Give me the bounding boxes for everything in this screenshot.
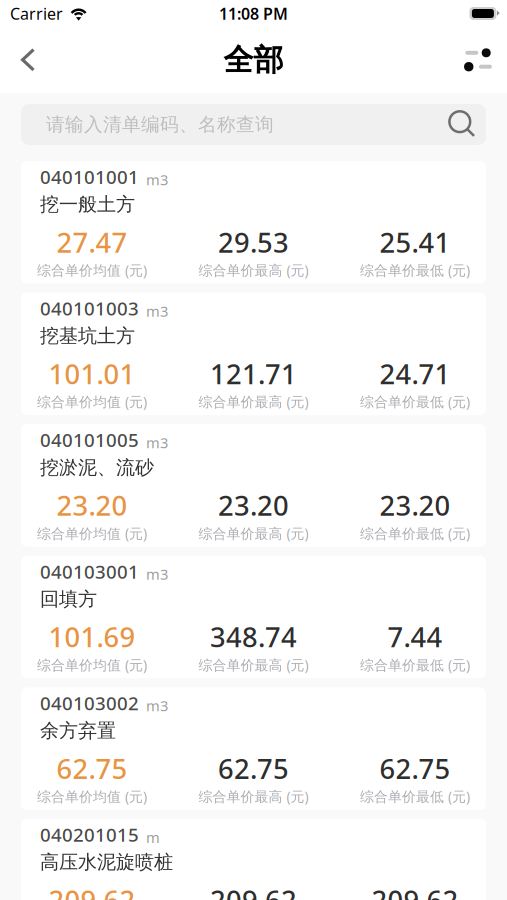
staticText: 040103002 bbox=[40, 690, 139, 716]
staticText: 23.20 bbox=[379, 487, 450, 524]
staticText: 25.41 bbox=[379, 223, 450, 261]
staticText: 209.62 bbox=[210, 881, 297, 900]
staticText: 11:08 PM bbox=[219, 3, 288, 24]
button[interactable]: Filter bbox=[461, 38, 503, 82]
staticText: 040101003 bbox=[40, 296, 139, 321]
staticText: 请输入清单编码、名称查询 bbox=[46, 113, 274, 136]
staticText: 101.69 bbox=[48, 618, 135, 655]
staticText: 综合单价均值 (元) bbox=[37, 524, 147, 543]
staticText: m3 bbox=[146, 433, 168, 453]
staticText: 综合单价最高 (元) bbox=[198, 261, 308, 280]
staticText: 29.53 bbox=[218, 223, 289, 261]
staticText: 综合单价最低 (元) bbox=[360, 392, 470, 411]
staticText: 209.62 bbox=[48, 881, 135, 900]
staticText: 挖淤泥、流砂 bbox=[40, 455, 154, 479]
button[interactable]: 040101001 bbox=[21, 161, 486, 284]
staticText: 62.75 bbox=[218, 750, 289, 787]
staticText: 040103001 bbox=[40, 559, 139, 584]
staticText: m3 bbox=[146, 169, 168, 189]
staticText: m3 bbox=[146, 696, 168, 716]
staticText: m3 bbox=[146, 301, 168, 321]
staticText: 209.62 bbox=[371, 881, 458, 900]
staticText: 综合单价最低 (元) bbox=[360, 261, 470, 280]
staticText: 101.01 bbox=[48, 355, 135, 392]
button[interactable]: 040201015 bbox=[21, 819, 486, 900]
staticText: 综合单价最高 (元) bbox=[198, 787, 308, 806]
staticText: Carrier bbox=[10, 3, 63, 24]
staticText: 综合单价均值 (元) bbox=[37, 787, 147, 806]
staticText: 综合单价最低 (元) bbox=[360, 524, 470, 543]
staticText: 23.20 bbox=[56, 487, 127, 524]
staticText: 综合单价最低 (元) bbox=[360, 787, 470, 806]
staticText: 348.74 bbox=[210, 618, 297, 655]
staticText: 综合单价最低 (元) bbox=[360, 655, 470, 674]
staticText: 综合单价最高 (元) bbox=[198, 392, 308, 411]
staticText: m bbox=[146, 827, 160, 847]
button[interactable]: 040103001 bbox=[21, 556, 486, 678]
staticText: 余方弃置 bbox=[40, 719, 116, 743]
button[interactable]: 040101005 bbox=[21, 424, 486, 547]
staticText: m3 bbox=[146, 564, 168, 584]
button[interactable]: Back bbox=[7, 38, 49, 82]
button[interactable]: 请输入清单编码、名称查询 bbox=[21, 104, 486, 145]
staticText: 121.71 bbox=[210, 355, 297, 392]
staticText: 综合单价最高 (元) bbox=[198, 655, 308, 674]
staticText: 27.47 bbox=[56, 223, 127, 261]
staticText: 全部 bbox=[223, 41, 283, 79]
staticText: 62.75 bbox=[379, 750, 450, 787]
staticText: 综合单价最高 (元) bbox=[198, 524, 308, 543]
staticText: 挖一般土方 bbox=[40, 192, 135, 216]
staticText: 综合单价均值 (元) bbox=[37, 392, 147, 411]
button[interactable]: 040101003 bbox=[21, 293, 486, 415]
staticText: 高压水泥旋喷桩 bbox=[40, 850, 173, 874]
staticText: 62.75 bbox=[56, 750, 127, 787]
staticText: 综合单价均值 (元) bbox=[37, 261, 147, 280]
staticText: 040201015 bbox=[40, 822, 139, 847]
staticText: 回填方 bbox=[40, 587, 97, 611]
staticText: 24.71 bbox=[379, 355, 450, 392]
staticText: 挖基坑土方 bbox=[40, 324, 135, 348]
staticText: 040101001 bbox=[40, 164, 139, 189]
staticText: 7.44 bbox=[387, 618, 442, 655]
staticText: 040101005 bbox=[40, 427, 139, 452]
staticText: 23.20 bbox=[218, 487, 289, 524]
button[interactable]: 040103002 bbox=[21, 687, 486, 810]
staticText: 综合单价均值 (元) bbox=[37, 655, 147, 674]
